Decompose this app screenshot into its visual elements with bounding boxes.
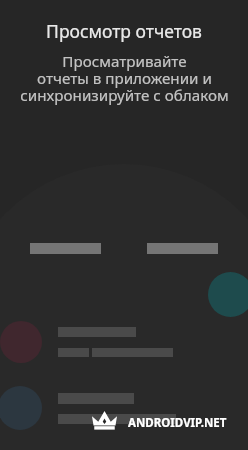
staticText: Просматривайте отчеты в приложении и син… (20, 51, 229, 106)
staticText: ANDROIDVIP.NET (128, 415, 227, 431)
staticText: Просмотр отчетов (46, 19, 202, 43)
other: Crown (92, 411, 117, 430)
